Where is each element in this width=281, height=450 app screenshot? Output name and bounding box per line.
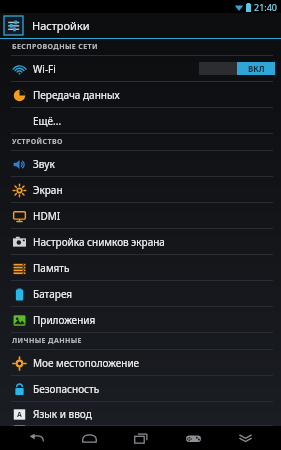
staticText: Память — [33, 261, 70, 275]
staticText: ЛИЧНЫЕ ДАННЫЕ — [12, 336, 82, 346]
button[interactable]: Звук — [0, 151, 281, 177]
button[interactable]: Передача данных — [0, 82, 281, 108]
button[interactable]: Games — [179, 426, 207, 450]
button[interactable]: Безопасность — [0, 376, 281, 402]
button[interactable]: Настройка снимков экрана — [0, 229, 281, 255]
button[interactable]: Home — [75, 426, 103, 450]
button[interactable]: Wi-Fi — [0, 56, 281, 82]
button[interactable]: Приложения — [0, 307, 281, 333]
staticText: Экран — [33, 183, 63, 197]
staticText: Приложения — [33, 313, 96, 327]
button[interactable]: Экран — [0, 177, 281, 203]
button[interactable]: HDMI — [0, 203, 281, 229]
staticText: БЕСПРОВОДНЫЕ СЕТИ — [12, 42, 98, 52]
staticText: Язык и ввод — [33, 407, 92, 421]
button[interactable]: Recents — [127, 426, 155, 450]
staticText: Передача данных — [33, 88, 120, 102]
button[interactable]: A — [0, 402, 281, 426]
staticText: ВКЛ — [248, 63, 265, 74]
staticText: Настройка снимков экрана — [33, 235, 165, 249]
staticText: Настройки — [32, 18, 90, 33]
button[interactable]: Мое местоположение — [0, 350, 281, 376]
staticText: УСТРОЙСТВО — [12, 137, 63, 147]
staticText: Ещё... — [33, 114, 62, 128]
staticText: Мое местоположение — [33, 356, 140, 370]
staticText: Безопасность — [33, 382, 100, 396]
button[interactable]: Настройки — [0, 13, 281, 38]
button[interactable]: Ещё... — [0, 108, 281, 134]
staticText: Wi-Fi — [33, 62, 56, 76]
button[interactable]: Back — [22, 426, 50, 450]
staticText: Звук — [33, 157, 55, 171]
staticText: A — [17, 410, 22, 420]
staticText: HDMI — [33, 209, 61, 223]
staticText: Батарея — [33, 287, 73, 301]
button[interactable]: Hide — [231, 426, 259, 450]
staticText: 21:40 — [254, 1, 278, 13]
button[interactable]: Wi-Fi toggle — [199, 62, 275, 75]
button[interactable]: Память — [0, 255, 281, 281]
button[interactable]: Батарея — [0, 281, 281, 307]
